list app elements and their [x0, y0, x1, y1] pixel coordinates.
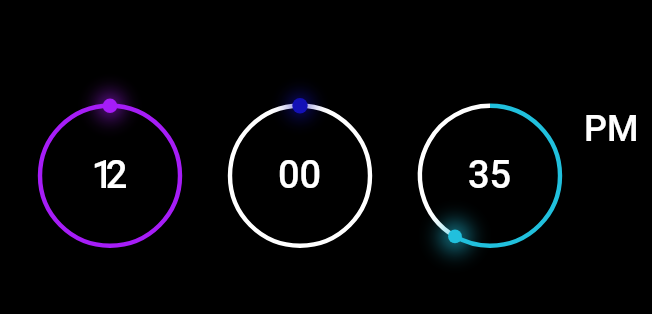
- button[interactable]: Second 35: [412, 98, 568, 254]
- button[interactable]: PM, switch to AM: [584, 110, 640, 146]
- button[interactable]: Minute 00: [222, 98, 378, 254]
- button[interactable]: Hour 12: [32, 98, 188, 254]
